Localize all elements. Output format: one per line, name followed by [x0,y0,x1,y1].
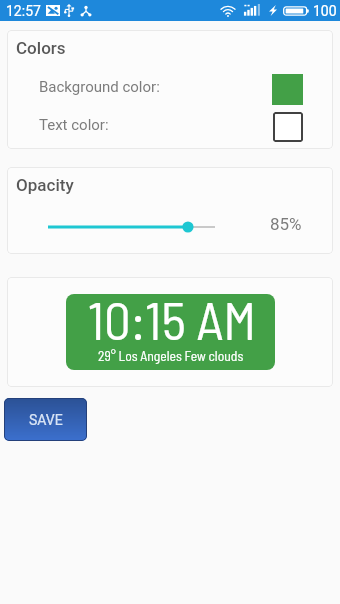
staticText: SAVE [29,412,63,428]
button[interactable]: Background color: [7,68,333,106]
button[interactable]: Opacity slider, 85 percent [7,209,333,245]
button[interactable]: Widget preview [66,294,275,370]
button[interactable]: SAVE [4,398,87,441]
staticText: 100 [313,3,337,19]
staticText: 12:57 [6,3,41,19]
staticText: Colors [16,38,66,58]
staticText: Background color: [39,78,160,96]
staticText: 29° Los Angeles Few clouds [98,347,244,363]
staticText: 10:15 AM [88,294,257,351]
staticText: 85% [270,214,302,234]
button[interactable]: Text color: [7,106,333,144]
staticText: Text color: [39,116,109,134]
staticText: Opacity [16,175,74,195]
